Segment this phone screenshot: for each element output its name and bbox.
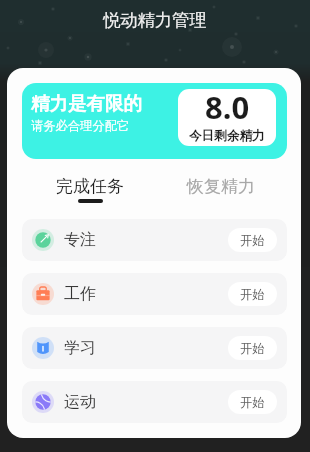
staticText: 开始 (240, 233, 265, 248)
staticText: 开始 (240, 341, 265, 356)
button[interactable]: 开始 (228, 390, 277, 414)
staticText: 完成任务 (56, 176, 124, 197)
button[interactable]: 运动 (22, 381, 287, 423)
button[interactable]: 恢复精力 (182, 176, 259, 206)
button[interactable]: 精力是有限的 (22, 83, 287, 159)
other: 工作 (32, 283, 54, 305)
button[interactable]: 开始 (228, 228, 277, 252)
staticText: 精力是有限的 (31, 92, 142, 115)
staticText: 开始 (240, 395, 265, 410)
other: 专注 (32, 229, 54, 251)
button[interactable]: 8.0 (178, 89, 276, 146)
staticText: 开始 (240, 287, 265, 302)
staticText: 专注 (64, 230, 96, 250)
button[interactable]: 学习 (22, 327, 287, 369)
button[interactable]: 完成任务 (51, 176, 128, 206)
staticText: 今日剩余精力 (189, 128, 265, 143)
staticText: 8.0 (205, 89, 250, 128)
other: 学习 (32, 337, 54, 359)
staticText: 请务必合理分配它 (31, 118, 130, 133)
staticText: 工作 (64, 284, 96, 304)
other: 运动 (32, 391, 54, 413)
button[interactable]: 专注 (22, 219, 287, 261)
staticText: 恢复精力 (187, 176, 255, 197)
button[interactable]: 开始 (228, 336, 277, 360)
staticText: 悦动精力管理 (103, 9, 207, 31)
staticText: 学习 (64, 338, 96, 358)
button[interactable]: 开始 (228, 282, 277, 306)
button[interactable]: 工作 (22, 273, 287, 315)
staticText: 运动 (64, 392, 96, 412)
